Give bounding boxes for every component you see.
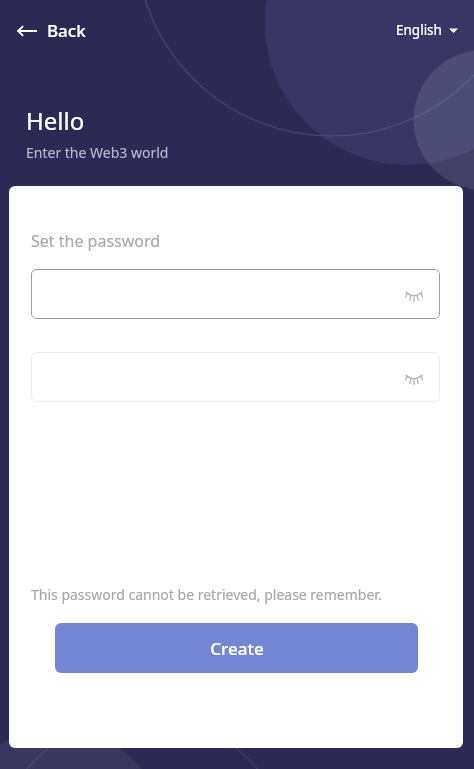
other: Back [16, 20, 38, 42]
button[interactable]: Show password [402, 282, 426, 306]
button[interactable]: Show password [402, 365, 426, 389]
staticText: Set the password [31, 230, 161, 252]
button[interactable]: Show password [31, 269, 440, 319]
staticText: This password cannot be retrieved, pleas… [31, 585, 382, 604]
staticText: Back [47, 19, 86, 42]
button[interactable]: Show password [31, 352, 440, 402]
staticText: English [396, 21, 442, 39]
button[interactable]: Create [55, 623, 418, 673]
staticText: Hello [26, 104, 85, 137]
button[interactable]: English [394, 15, 460, 45]
staticText: Enter the Web3 world [26, 143, 169, 162]
staticText: Create [210, 637, 264, 660]
button[interactable]: Back [14, 13, 88, 48]
